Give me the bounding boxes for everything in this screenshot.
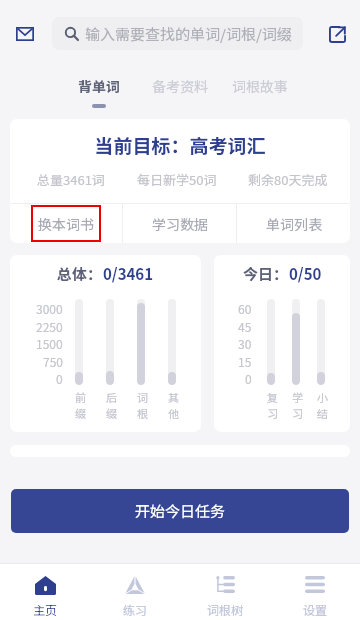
staticText: 复 [267, 389, 275, 405]
button[interactable]: 设置 [270, 564, 360, 620]
button[interactable]: 练习 [90, 564, 180, 620]
button[interactable]: 备考资料 [147, 76, 213, 104]
button[interactable]: 主页 [0, 564, 90, 620]
staticText: 今日： [243, 263, 289, 283]
button[interactable]: 词根故事 [227, 76, 293, 104]
staticText: 0/3461 [103, 263, 154, 283]
staticText: 缀 [106, 405, 114, 421]
button[interactable]: 开始今日任务 [11, 489, 349, 533]
staticText: 0/50 [289, 263, 322, 283]
staticText: 练习 [123, 601, 148, 618]
staticText: 小 [317, 389, 325, 405]
staticText: 根 [137, 405, 145, 421]
staticText: 其 [168, 389, 176, 405]
staticText: 15 [238, 353, 252, 370]
staticText: 学习数据 [152, 214, 208, 234]
staticText: 词 [137, 389, 145, 405]
staticText: 0 [245, 370, 252, 387]
staticText: 2250 [36, 318, 63, 335]
staticText: 45 [238, 318, 252, 335]
button[interactable]: Open external link [322, 19, 352, 49]
button[interactable]: 输入需要查找的单词/词根/词缀 [52, 17, 303, 50]
staticText: 习 [267, 405, 275, 421]
staticText: 词根树 [207, 601, 244, 618]
staticText: 换本词书 [38, 214, 94, 234]
staticText: 开始今日任务 [135, 500, 226, 522]
staticText: 他 [168, 405, 176, 421]
staticText: 学 [292, 389, 300, 405]
staticText: 前 [75, 389, 83, 405]
button[interactable]: 背单词 [66, 76, 132, 108]
button[interactable]: 单词列表 [259, 205, 329, 242]
staticText: 当前目标：高考词汇 [94, 131, 266, 157]
button[interactable]: 换本词书 [31, 205, 101, 242]
staticText: 剩余80天完成 [248, 170, 328, 188]
staticText: 设置 [303, 601, 328, 618]
staticText: 背单词 [78, 76, 120, 96]
staticText: 缀 [75, 405, 83, 421]
staticText: 1500 [36, 335, 63, 352]
staticText: 750 [43, 353, 63, 370]
staticText: 主页 [33, 601, 58, 618]
staticText: 单词列表 [266, 214, 322, 234]
staticText: 60 [238, 300, 252, 317]
button[interactable]: 学习数据 [145, 205, 215, 242]
staticText: 每日新学50词 [137, 170, 217, 188]
staticText: 备考资料 [152, 76, 208, 96]
staticText: 结 [317, 405, 325, 421]
staticText: 0 [56, 370, 63, 387]
staticText: 词根故事 [232, 76, 288, 96]
staticText: 30 [238, 335, 252, 352]
staticText: 总量3461词 [37, 170, 105, 188]
staticText: 总体： [57, 263, 103, 283]
staticText: 习 [292, 405, 300, 421]
staticText: 3000 [36, 300, 63, 317]
button[interactable]: Mail [8, 17, 42, 51]
staticText: 后 [106, 389, 114, 405]
staticText: 输入需要查找的单词/词根/词缀 [85, 23, 292, 45]
button[interactable]: 词根树 [180, 564, 270, 620]
